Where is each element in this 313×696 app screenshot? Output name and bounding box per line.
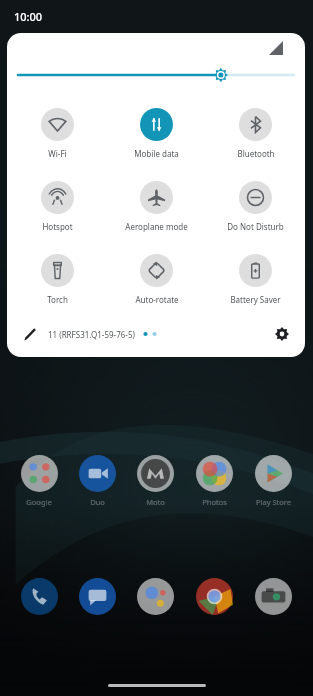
button[interactable]: Wi-Fi [7, 106, 107, 161]
button[interactable]: messages [68, 578, 126, 615]
button[interactable]: assistant [126, 578, 185, 615]
button[interactable]: Torch [7, 252, 107, 307]
button[interactable]: Settings [271, 323, 293, 345]
staticText: Wi-Fi [48, 148, 67, 159]
staticText: 11 (RRFS31.Q1-59-76-5) [48, 329, 135, 340]
button[interactable]: Bluetooth [206, 106, 305, 161]
button[interactable]: Duo [68, 455, 126, 507]
button[interactable]: Play Store [244, 455, 303, 507]
staticText: Aeroplane mode [125, 221, 188, 232]
staticText: Auto-rotate [135, 294, 179, 305]
button[interactable]: Edit tiles [19, 324, 39, 344]
staticText: Moto [146, 497, 165, 507]
staticText: Bluetooth [237, 148, 275, 159]
staticText: Do Not Disturb [227, 221, 284, 232]
staticText: Google [26, 497, 52, 507]
staticText: Mobile data [134, 148, 179, 159]
staticText: 10:00 [14, 9, 43, 24]
button[interactable]: Do Not Disturb [206, 179, 305, 234]
staticText: Play Store [256, 497, 291, 507]
button[interactable]: Google [10, 455, 68, 507]
button[interactable]: Brightness [7, 63, 305, 87]
button[interactable]: camera [244, 578, 303, 615]
button[interactable]: chrome [185, 578, 244, 615]
button[interactable]: Hotspot [7, 179, 107, 234]
staticText: Torch [47, 294, 68, 305]
button[interactable]: Mobile data [107, 106, 206, 161]
other: Signal strength [269, 41, 283, 55]
staticText: Hotspot [42, 221, 73, 232]
button[interactable]: phone [10, 578, 68, 615]
button[interactable]: Moto [126, 455, 185, 507]
button[interactable]: Battery Saver [206, 252, 305, 307]
button[interactable]: Auto-rotate [107, 252, 206, 307]
staticText: Photos [202, 497, 227, 507]
staticText: Duo [90, 497, 105, 507]
staticText: Battery Saver [230, 294, 281, 305]
button[interactable]: Photos [185, 455, 244, 507]
button[interactable]: Aeroplane mode [107, 179, 206, 234]
